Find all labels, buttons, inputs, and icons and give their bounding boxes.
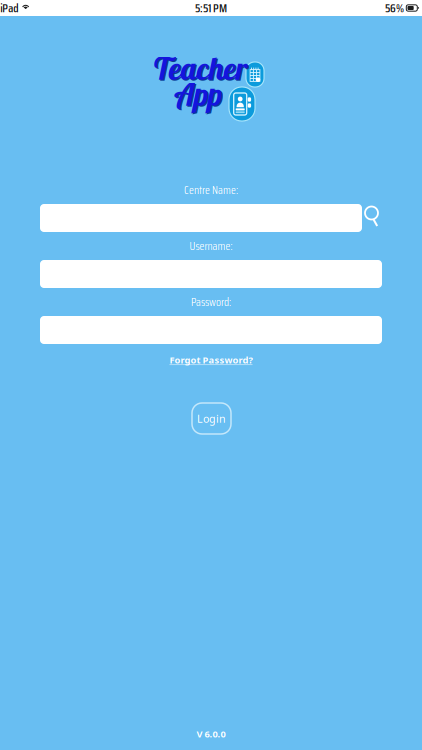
- button[interactable]: Forgot Password?: [156, 350, 266, 370]
- staticText: Username:: [189, 237, 232, 255]
- staticText: iPad: [0, 0, 18, 17]
- staticText: Password:: [191, 293, 231, 311]
- button[interactable]: Login: [192, 403, 231, 434]
- staticText: Teacher: [155, 50, 249, 88]
- staticText: Centre Name:: [184, 181, 238, 199]
- staticText: 5:51 PM: [195, 0, 227, 17]
- staticText: App: [175, 76, 223, 114]
- staticText: V 6.0.0: [196, 728, 225, 740]
- staticText: Forgot Password?: [169, 354, 252, 366]
- button[interactable]: Search centres: [362, 203, 382, 230]
- staticText: Teacher: [154, 49, 248, 87]
- staticText: 56%: [385, 0, 404, 17]
- staticText: Login: [197, 411, 226, 426]
- staticText: App: [174, 75, 222, 113]
